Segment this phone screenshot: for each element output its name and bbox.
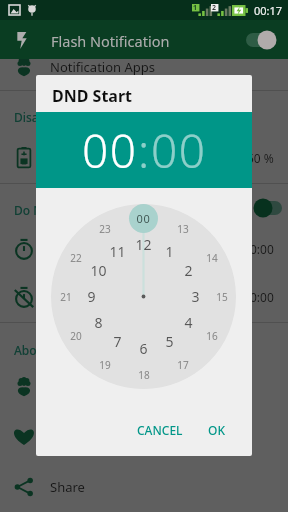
- button[interactable]: DND End: [0, 274, 288, 320]
- button[interactable]: Version: [0, 364, 288, 410]
- staticText: DND End: [50, 288, 106, 306]
- button[interactable]: Battery Level: [0, 135, 288, 181]
- staticText: DND Start: [50, 240, 112, 258]
- staticText: 4: [184, 313, 193, 332]
- staticText: 5: [165, 332, 174, 351]
- staticText: 00: [136, 211, 151, 226]
- button[interactable]: 00: [82, 119, 138, 182]
- button[interactable]: Clock dial: [51, 204, 236, 389]
- button[interactable]: Notification Apps: [0, 44, 288, 90]
- staticText: 3: [191, 287, 200, 306]
- staticText: 15: [216, 290, 228, 304]
- staticText: 7: [113, 332, 122, 351]
- staticText: 12: [135, 235, 152, 254]
- staticText: 16: [206, 329, 218, 343]
- staticText: :: [138, 119, 151, 182]
- staticText: 13: [177, 222, 189, 236]
- button[interactable]: Rate: [0, 414, 288, 460]
- staticText: Disable: [14, 109, 57, 125]
- button[interactable]: CANCEL: [130, 415, 190, 445]
- staticText: OK: [208, 422, 225, 438]
- staticText: 6: [139, 339, 148, 358]
- staticText: 2: [184, 261, 193, 280]
- staticText: 1: [165, 242, 174, 261]
- staticText: CANCEL: [137, 422, 183, 438]
- staticText: DND Start: [52, 85, 133, 107]
- staticText: Do Not Disturb: [14, 202, 101, 218]
- staticText: 18: [138, 368, 150, 382]
- staticText: 2: [212, 3, 217, 13]
- staticText: 0:00: [250, 241, 274, 257]
- button[interactable]: OK: [196, 415, 236, 445]
- staticText: 19: [99, 358, 111, 372]
- staticText: 20: [70, 329, 82, 343]
- staticText: 22: [70, 251, 82, 265]
- button[interactable]: Enable Do Not Disturb: [246, 196, 286, 220]
- button[interactable]: DND Start: [0, 226, 288, 272]
- staticText: 10: [90, 261, 107, 280]
- staticText: 8: [94, 313, 103, 332]
- other: Flash: [13, 31, 31, 49]
- staticText: Flash Notification: [51, 31, 170, 51]
- staticText: 14: [206, 251, 218, 265]
- staticText: 21: [60, 290, 72, 304]
- staticText: 00:17: [254, 3, 283, 18]
- staticText: 1: [193, 3, 198, 13]
- button[interactable]: Share: [0, 464, 288, 510]
- staticText: 0:00: [250, 289, 274, 305]
- staticText: Notification Apps: [50, 58, 156, 76]
- staticText: About: [14, 342, 49, 358]
- staticText: 11: [109, 242, 126, 261]
- staticText: 00: [151, 119, 207, 182]
- staticText: 17: [177, 358, 189, 372]
- staticText: 00: [82, 119, 138, 182]
- staticText: Battery Level: [50, 149, 130, 167]
- button[interactable]: 00: [151, 119, 207, 182]
- staticText: 9: [87, 287, 96, 306]
- staticText: 23: [99, 222, 111, 236]
- staticText: Share: [50, 478, 85, 496]
- staticText: 50 %: [247, 150, 274, 166]
- button[interactable]: Toggle flash notification: [242, 29, 282, 51]
